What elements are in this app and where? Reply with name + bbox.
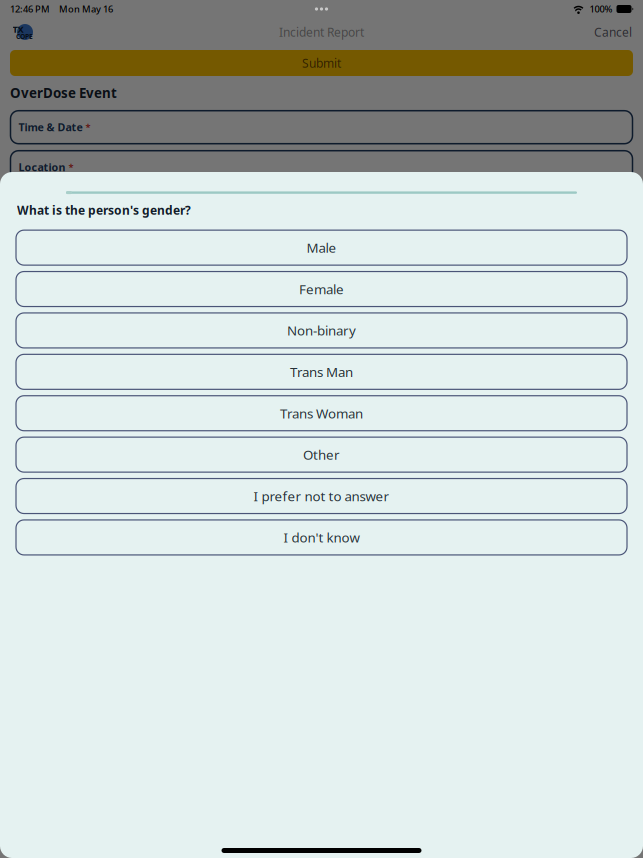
button[interactable]: Submit — [0, 50, 643, 76]
button[interactable]: Time & Date — [0, 111, 643, 144]
staticText: I don't know — [283, 529, 359, 546]
staticText: Other — [303, 446, 340, 463]
staticText: Submit — [302, 55, 341, 71]
staticText: Male — [306, 239, 336, 256]
staticText: OverDose Event — [10, 84, 117, 102]
staticText: 100% — [589, 3, 612, 15]
staticText: Non-binary — [287, 322, 356, 339]
staticText: Mon May 16 — [59, 3, 113, 15]
staticText: Female — [299, 280, 344, 298]
staticText: COPE — [16, 32, 33, 41]
button[interactable]: Non-binary — [16, 313, 627, 348]
staticText: I prefer not to answer — [253, 487, 389, 505]
staticText: What is the person's gender? — [17, 202, 191, 218]
button[interactable]: Trans Woman — [16, 396, 627, 431]
button[interactable]: Female — [16, 271, 627, 306]
button[interactable]: Male — [16, 230, 627, 265]
button[interactable]: I don't know — [16, 520, 627, 555]
staticText: Incident Report — [279, 24, 364, 40]
staticText: * — [68, 161, 73, 173]
staticText: Time & Date — [18, 120, 82, 134]
button[interactable]: Cancel — [586, 20, 632, 44]
staticText: 12:46 PM — [10, 3, 50, 15]
button[interactable]: Location — [0, 151, 643, 184]
staticText: * — [85, 121, 90, 133]
staticText: Location — [18, 160, 65, 174]
staticText: Cancel — [594, 24, 632, 40]
button[interactable]: I prefer not to answer — [16, 478, 627, 513]
staticText: Trans Man — [290, 363, 353, 381]
button[interactable]: Multitasking controls — [301, 0, 341, 18]
button[interactable]: Trans Man — [16, 354, 627, 389]
staticText: Trans Woman — [280, 404, 363, 422]
staticText: TX — [12, 23, 23, 35]
button[interactable]: Other — [16, 437, 627, 472]
